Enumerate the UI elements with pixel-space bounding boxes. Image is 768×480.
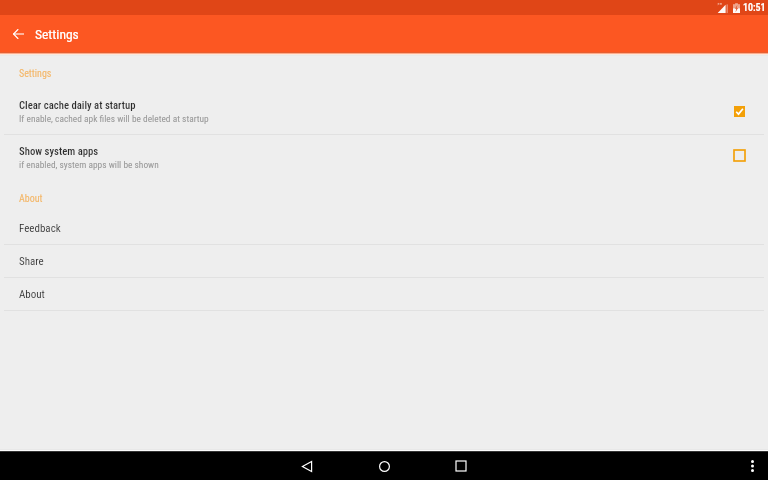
button[interactable]: Back [287,452,327,480]
staticText: Settings [35,26,79,42]
staticText: Settings [19,68,52,80]
staticText: if enabled, system apps will be shown [19,159,159,170]
button[interactable]: Clear cache daily at startup [0,89,768,134]
staticText: Share [19,255,44,268]
staticText: Feedback [19,222,61,235]
button[interactable]: Home [364,452,404,480]
staticText: Show system apps [19,145,99,158]
button[interactable]: Recent apps [441,452,481,480]
staticText: About [19,193,43,205]
staticText: 10:51 [743,2,766,14]
button[interactable]: About [0,278,768,310]
button[interactable]: Share [0,245,768,277]
staticText: About [19,288,45,301]
button[interactable]: More options [737,452,768,480]
staticText: If enable, cached apk files will be dele… [19,113,209,124]
staticText: Clear cache daily at startup [19,99,136,112]
button[interactable]: Navigate up [0,15,37,52]
button[interactable]: Show system apps [0,135,768,180]
button[interactable]: Feedback [0,212,768,244]
